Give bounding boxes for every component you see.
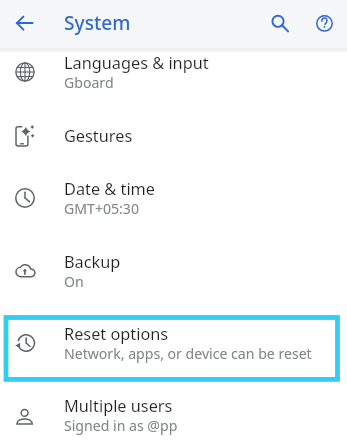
staticText: GMT+05:30 bbox=[64, 199, 139, 218]
staticText: Signed in as @pp bbox=[64, 416, 178, 435]
staticText: Date & time bbox=[64, 178, 156, 200]
staticText: Network, apps, or device can be reset bbox=[64, 344, 312, 363]
button[interactable]: Back bbox=[11, 10, 37, 36]
button[interactable]: Backup bbox=[0, 235, 347, 307]
staticText: Multiple users bbox=[64, 395, 173, 417]
staticText: Gboard bbox=[64, 73, 114, 92]
button[interactable]: Date & time bbox=[0, 162, 347, 234]
staticText: System bbox=[64, 9, 131, 35]
staticText: Gestures bbox=[64, 125, 133, 147]
button[interactable]: Help bbox=[311, 10, 337, 36]
button[interactable]: Search bbox=[267, 10, 293, 36]
button[interactable]: Gestures bbox=[0, 109, 347, 162]
button[interactable]: Languages & input bbox=[0, 36, 347, 108]
button[interactable]: Multiple users bbox=[0, 379, 347, 442]
staticText: Backup bbox=[64, 251, 121, 273]
button[interactable]: Reset options bbox=[0, 307, 347, 379]
staticText: Reset options bbox=[64, 323, 169, 345]
staticText: Languages & input bbox=[64, 52, 209, 74]
staticText: On bbox=[64, 272, 84, 291]
